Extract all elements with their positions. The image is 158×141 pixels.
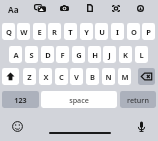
staticText: F <box>60 50 65 60</box>
button[interactable]: Document Scanner <box>112 5 120 12</box>
staticText: Q <box>6 27 12 37</box>
staticText: U <box>99 27 105 37</box>
button[interactable]: M <box>118 68 131 85</box>
button[interactable]: O <box>127 23 140 40</box>
button[interactable]: Backspace <box>138 68 155 85</box>
staticText: Aa <box>8 4 19 15</box>
button[interactable]: J <box>103 46 116 63</box>
staticText: T <box>68 27 73 37</box>
button[interactable]: B <box>86 68 99 85</box>
staticText: L <box>139 50 144 60</box>
staticText: X <box>43 72 49 82</box>
button[interactable]: C <box>55 68 68 85</box>
button[interactable]: Camera <box>60 5 69 11</box>
button[interactable]: L <box>135 46 148 63</box>
button[interactable]: Z <box>23 68 36 85</box>
button[interactable]: Files <box>87 4 93 12</box>
staticText: S <box>29 50 34 60</box>
button[interactable]: I <box>111 23 124 40</box>
button[interactable]: T <box>64 23 77 40</box>
button[interactable]: return <box>120 91 156 108</box>
button[interactable]: A <box>9 46 22 63</box>
button[interactable]: Photos <box>34 4 46 12</box>
staticText: E <box>37 27 42 37</box>
button[interactable]: P <box>142 23 155 40</box>
staticText: Z <box>27 72 32 82</box>
button[interactable]: D <box>41 46 54 63</box>
staticText: H <box>92 50 98 60</box>
staticText: Y <box>84 27 89 37</box>
staticText: O <box>131 27 137 37</box>
staticText: space <box>69 95 89 105</box>
staticText: W <box>20 27 28 37</box>
staticText: B <box>90 72 95 82</box>
staticText: G <box>76 50 82 60</box>
button[interactable]: H <box>88 46 101 63</box>
button[interactable]: Emoji <box>10 119 24 133</box>
staticText: C <box>59 72 64 82</box>
button[interactable]: space <box>41 91 117 108</box>
button[interactable]: S <box>25 46 38 63</box>
button[interactable]: U <box>95 23 108 40</box>
button[interactable]: Apple Cash <box>137 5 144 12</box>
button[interactable]: Shift <box>2 68 19 85</box>
staticText: return <box>127 95 149 105</box>
staticText: 123 <box>14 95 27 105</box>
button[interactable]: N <box>102 68 115 85</box>
button[interactable]: V <box>70 68 83 85</box>
button[interactable]: Q <box>2 23 15 40</box>
staticText: K <box>123 50 128 60</box>
button[interactable]: G <box>72 46 85 63</box>
button[interactable]: R <box>48 23 61 40</box>
staticText: N <box>105 72 112 82</box>
button[interactable]: E <box>33 23 46 40</box>
staticText: A <box>13 50 19 60</box>
button[interactable]: Aa <box>6 3 21 15</box>
button[interactable]: Y <box>80 23 93 40</box>
button[interactable]: Dictation <box>134 119 148 133</box>
staticText: M <box>121 72 129 82</box>
button[interactable]: K <box>119 46 132 63</box>
staticText: D <box>45 50 51 60</box>
button[interactable]: 123 <box>2 91 39 108</box>
button[interactable]: X <box>39 68 52 85</box>
staticText: R <box>52 27 57 37</box>
staticText: V <box>74 72 79 82</box>
button[interactable]: W <box>17 23 30 40</box>
staticText: J <box>108 50 111 60</box>
staticText: I <box>116 27 119 37</box>
staticText: P <box>146 27 151 37</box>
button[interactable]: F <box>56 46 69 63</box>
